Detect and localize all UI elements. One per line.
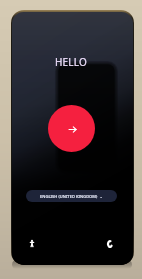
button[interactable]: Accessibility bbox=[24, 235, 40, 251]
button[interactable]: Next bbox=[48, 105, 95, 152]
staticText: ENGLISH (UNITED KINGDOM) ⌄ bbox=[40, 194, 103, 199]
staticText: HELLO bbox=[55, 55, 88, 69]
button[interactable]: ENGLISH (UNITED KINGDOM) ⌄ bbox=[26, 190, 117, 202]
button[interactable]: Emergency call bbox=[102, 236, 118, 252]
